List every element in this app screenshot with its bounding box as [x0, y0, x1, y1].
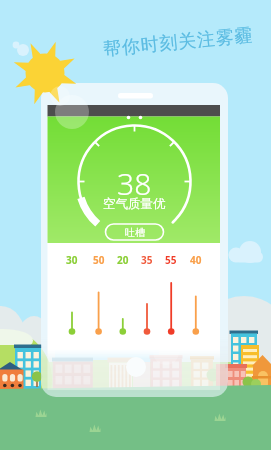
- button[interactable]: 吐槽: [105, 224, 164, 240]
- staticText: 35: [141, 253, 153, 267]
- staticText: 空气质量优: [103, 196, 166, 212]
- staticText: 20: [117, 253, 129, 267]
- staticText: 50: [93, 253, 105, 267]
- staticText: 吐槽: [125, 226, 145, 239]
- staticText: 38: [117, 163, 152, 195]
- staticText: 55: [165, 253, 177, 267]
- staticText: 帮你时刻关注雾霾: [102, 24, 255, 61]
- staticText: 40: [190, 253, 202, 267]
- staticText: 30: [66, 253, 78, 267]
